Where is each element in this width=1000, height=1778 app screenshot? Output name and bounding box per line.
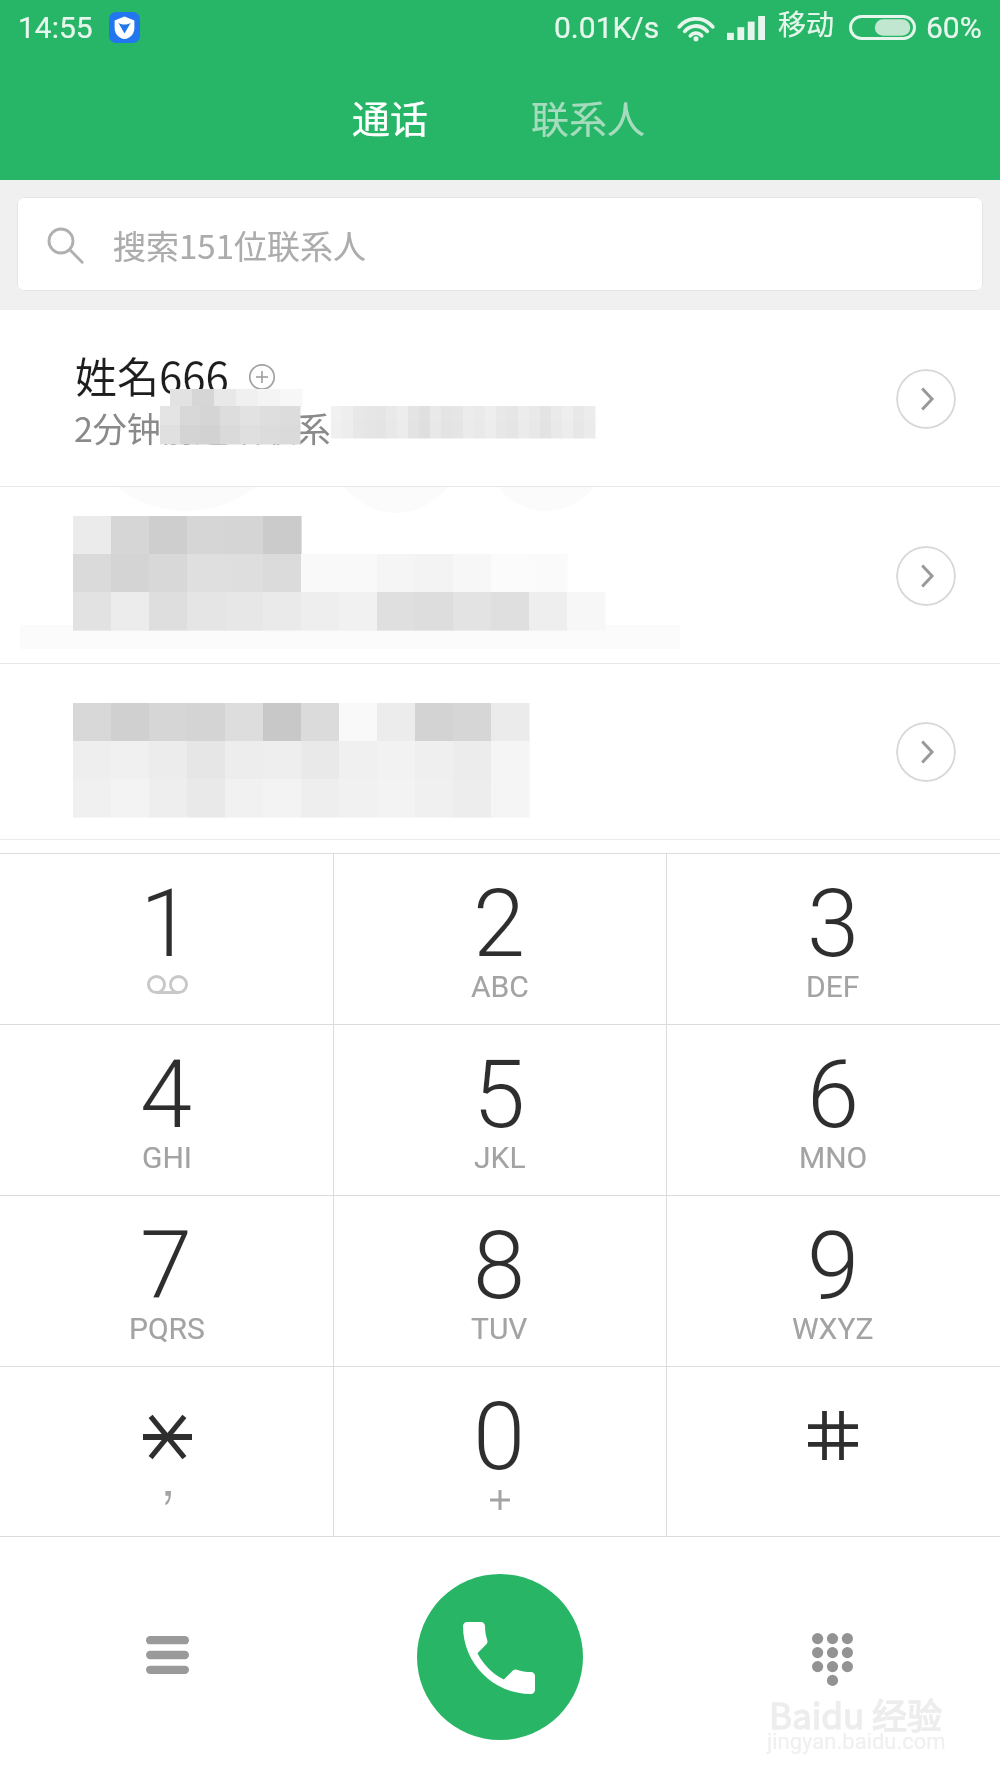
button[interactable]: 0 — [333, 1366, 666, 1537]
button[interactable] — [0, 1366, 333, 1537]
button[interactable]: Call log — [117, 1605, 217, 1705]
staticText: MNO — [799, 1140, 868, 1175]
staticText: 2 — [473, 869, 526, 979]
staticText: Baidu 经验 — [769, 1688, 943, 1739]
staticText: 2分钟前通话联系 — [74, 403, 331, 452]
button[interactable]: 9 — [666, 1195, 1000, 1366]
staticText: 4 — [140, 1040, 193, 1150]
staticText: JKL — [474, 1140, 526, 1175]
staticText: 姓名666 — [75, 344, 229, 405]
button[interactable]: 1 — [0, 853, 333, 1024]
button[interactable]: 搜索151位联系人 — [17, 197, 983, 291]
button[interactable]: Call — [417, 1574, 583, 1740]
button[interactable]: 联系人 — [509, 67, 668, 166]
button[interactable]: Details — [896, 369, 956, 429]
staticText: 通话 — [352, 89, 429, 144]
staticText: TUV — [471, 1311, 528, 1346]
button[interactable]: Keypad — [782, 1609, 882, 1709]
staticText: 移动 — [778, 3, 835, 44]
button[interactable]: 4 — [0, 1024, 333, 1195]
staticText: PQRS — [129, 1311, 205, 1346]
staticText: DEF — [806, 969, 860, 1004]
button[interactable]: 姓名666 — [0, 310, 1000, 486]
staticText: 8 — [473, 1211, 526, 1321]
staticText: 0.01K/s — [554, 10, 660, 45]
staticText: 联系人 — [531, 89, 646, 144]
button[interactable]: Details — [896, 722, 956, 782]
button[interactable]: Details — [0, 487, 1000, 663]
button[interactable]: 6 — [666, 1024, 1000, 1195]
staticText: 9 — [807, 1211, 860, 1321]
button[interactable]: 通话 — [330, 67, 451, 166]
staticText: 60% — [926, 10, 982, 45]
staticText: ABC — [471, 969, 529, 1004]
button[interactable]: 5 — [333, 1024, 666, 1195]
staticText: WXYZ — [792, 1311, 874, 1346]
button[interactable]: 7 — [0, 1195, 333, 1366]
staticText: 14:55 — [18, 10, 93, 45]
button[interactable]: Details — [0, 664, 1000, 839]
staticText: 7 — [140, 1211, 193, 1321]
button[interactable]: Details — [896, 546, 956, 606]
button[interactable]: 2 — [333, 853, 666, 1024]
staticText: 3 — [807, 869, 860, 979]
staticText: 5 — [473, 1040, 526, 1150]
staticText: GHI — [142, 1140, 192, 1175]
staticText: 搜索151位联系人 — [113, 221, 366, 269]
button[interactable]: 8 — [333, 1195, 666, 1366]
staticText: 0 — [473, 1382, 526, 1492]
button[interactable] — [666, 1366, 1000, 1537]
staticText: jingyan.baidu.com — [767, 1729, 946, 1755]
staticText: 1 — [140, 869, 193, 979]
button[interactable]: 3 — [666, 853, 1000, 1024]
staticText: 6 — [807, 1040, 860, 1150]
